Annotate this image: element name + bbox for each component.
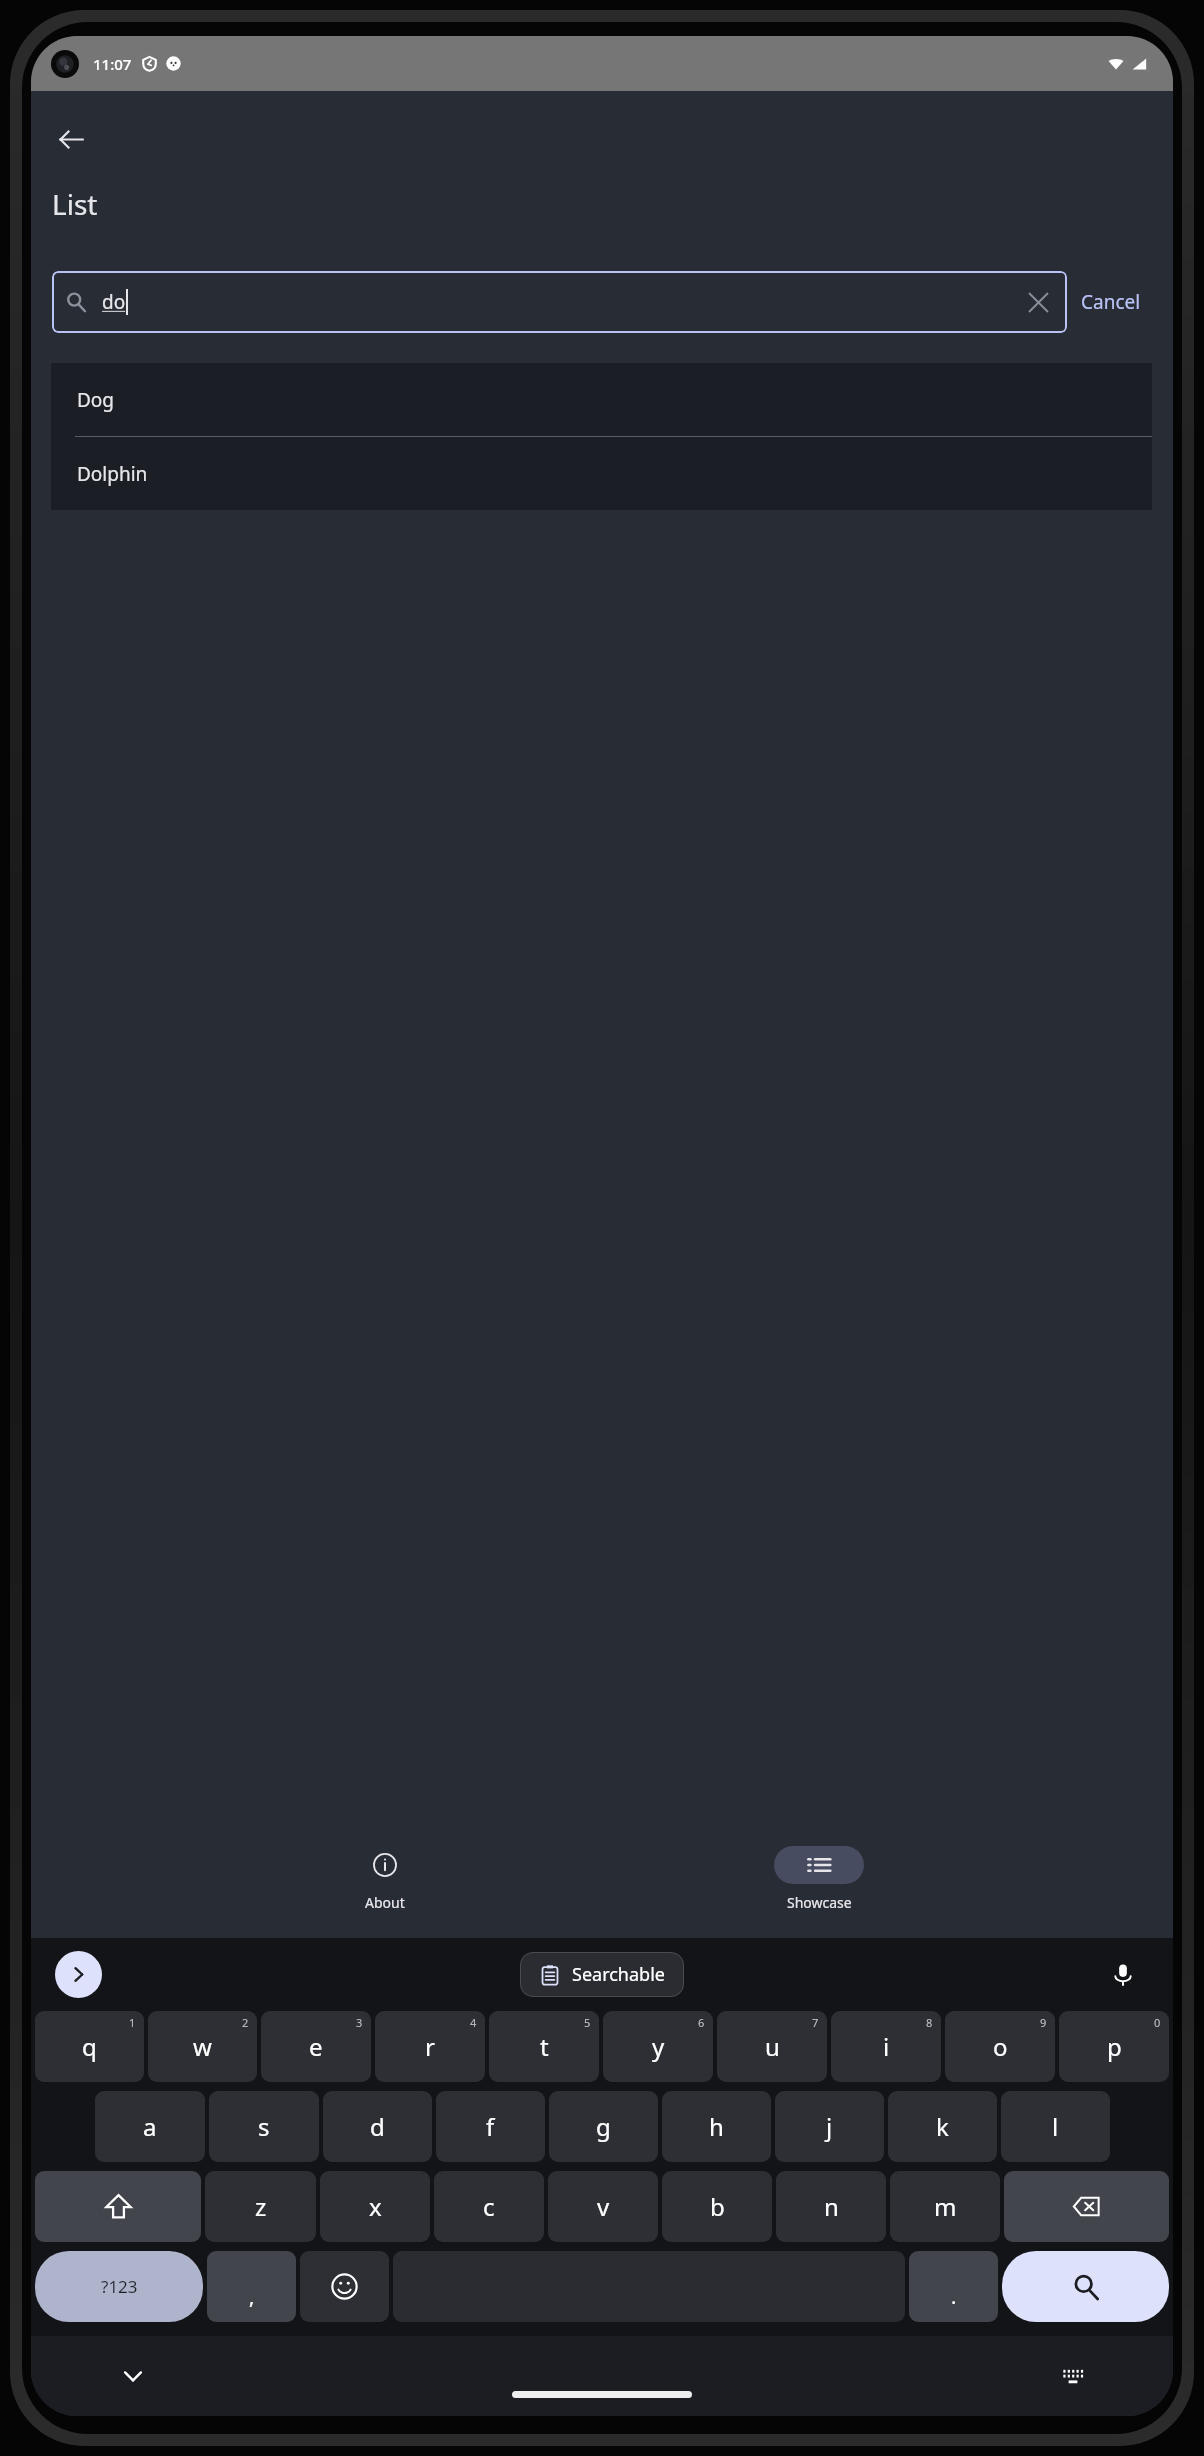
- button[interactable]: p: [1059, 2011, 1169, 2082]
- button[interactable]: o: [945, 2011, 1055, 2082]
- button[interactable]: Change keyboard: [1051, 2354, 1095, 2398]
- button[interactable]: Voice input: [1103, 1955, 1143, 1995]
- button[interactable]: ?123: [35, 2251, 203, 2322]
- staticText: x: [369, 2190, 382, 2223]
- button[interactable]: Showcase: [739, 1842, 899, 1916]
- staticText: w: [193, 2030, 212, 2063]
- staticText: ?123: [101, 2275, 138, 2298]
- button[interactable]: Dog: [51, 363, 1152, 437]
- button[interactable]: Emoji: [300, 2251, 389, 2322]
- button[interactable]: e: [261, 2011, 371, 2082]
- staticText: c: [483, 2190, 495, 2223]
- staticText: do: [102, 289, 126, 315]
- staticText: r: [425, 2030, 435, 2063]
- button[interactable]: Backspace: [1004, 2171, 1169, 2242]
- button[interactable]: Shift: [35, 2171, 201, 2242]
- button[interactable]: v: [548, 2171, 658, 2242]
- staticText: Showcase: [787, 1893, 852, 1912]
- button[interactable]: Search: [1002, 2251, 1169, 2322]
- staticText: 3: [356, 2015, 363, 2030]
- staticText: z: [255, 2190, 267, 2223]
- button[interactable]: u: [717, 2011, 827, 2082]
- staticText: Searchable: [572, 1962, 665, 1987]
- staticText: 11:07: [93, 54, 132, 74]
- staticText: About: [365, 1893, 405, 1912]
- staticText: l: [1052, 2110, 1059, 2143]
- staticText: .: [951, 2283, 957, 2310]
- staticText: v: [597, 2190, 610, 2223]
- staticText: Dog: [77, 387, 115, 413]
- staticText: y: [652, 2030, 665, 2063]
- staticText: e: [309, 2030, 323, 2063]
- button[interactable]: a: [95, 2091, 205, 2162]
- staticText: p: [1107, 2030, 1122, 2063]
- staticText: ,: [249, 2283, 255, 2310]
- staticText: s: [258, 2110, 270, 2143]
- button[interactable]: j: [775, 2091, 884, 2162]
- staticText: List: [52, 185, 98, 223]
- staticText: Cancel: [1081, 289, 1141, 315]
- button[interactable]: w: [148, 2011, 257, 2082]
- staticText: Dolphin: [77, 461, 148, 487]
- staticText: q: [82, 2030, 97, 2063]
- button[interactable]: b: [662, 2171, 772, 2242]
- staticText: 9: [1040, 2015, 1047, 2030]
- button[interactable]: Searchable: [520, 1952, 684, 1997]
- button[interactable]: .: [909, 2251, 998, 2322]
- button[interactable]: f: [436, 2091, 545, 2162]
- staticText: t: [540, 2030, 549, 2063]
- staticText: 4: [470, 2015, 477, 2030]
- staticText: h: [709, 2110, 724, 2143]
- button[interactable]: ,: [207, 2251, 296, 2322]
- button[interactable]: z: [205, 2171, 316, 2242]
- button[interactable]: Cancel: [1067, 281, 1155, 323]
- staticText: 1: [129, 2015, 136, 2030]
- button[interactable]: y: [603, 2011, 713, 2082]
- button[interactable]: q: [35, 2011, 144, 2082]
- button[interactable]: r: [375, 2011, 485, 2082]
- button[interactable]: m: [890, 2171, 1000, 2242]
- button[interactable]: l: [1001, 2091, 1110, 2162]
- button[interactable]: do: [52, 271, 1067, 333]
- staticText: 0: [1154, 2015, 1161, 2030]
- button[interactable]: Clear: [1023, 287, 1053, 317]
- button[interactable]: n: [776, 2171, 886, 2242]
- staticText: m: [934, 2190, 957, 2223]
- staticText: b: [710, 2190, 725, 2223]
- button[interactable]: d: [323, 2091, 432, 2162]
- button[interactable]: Dolphin: [51, 437, 1152, 510]
- staticText: g: [596, 2110, 611, 2143]
- staticText: 8: [926, 2015, 933, 2030]
- staticText: u: [765, 2030, 780, 2063]
- staticText: 6: [698, 2015, 705, 2030]
- staticText: f: [486, 2110, 495, 2143]
- staticText: a: [143, 2110, 157, 2143]
- button[interactable]: h: [662, 2091, 771, 2162]
- staticText: 5: [584, 2015, 591, 2030]
- button[interactable]: i: [831, 2011, 941, 2082]
- button[interactable]: k: [888, 2091, 997, 2162]
- button[interactable]: x: [320, 2171, 430, 2242]
- staticText: 7: [812, 2015, 819, 2030]
- staticText: o: [993, 2030, 1008, 2063]
- staticText: j: [826, 2110, 833, 2143]
- button[interactable]: About: [305, 1842, 465, 1916]
- staticText: 2: [242, 2015, 249, 2030]
- button[interactable]: Hide keyboard: [111, 2354, 155, 2398]
- staticText: k: [936, 2110, 949, 2143]
- staticText: i: [883, 2030, 890, 2063]
- button[interactable]: s: [209, 2091, 319, 2162]
- button[interactable]: Expand: [55, 1951, 102, 1998]
- button[interactable]: g: [549, 2091, 658, 2162]
- button[interactable]: Back: [47, 115, 95, 163]
- button[interactable]: c: [434, 2171, 544, 2242]
- staticText: n: [824, 2190, 839, 2223]
- button[interactable]: t: [489, 2011, 599, 2082]
- staticText: d: [370, 2110, 385, 2143]
